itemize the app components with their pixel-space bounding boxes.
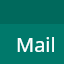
staticText: Mail — [16, 31, 56, 58]
